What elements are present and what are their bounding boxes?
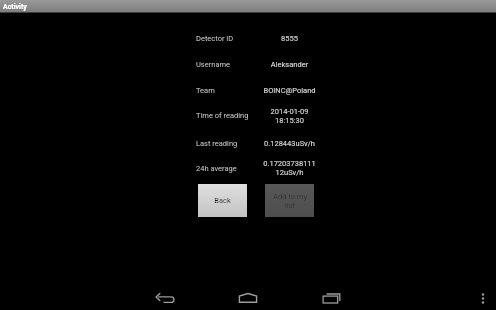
staticText: Username	[196, 60, 231, 69]
button[interactable]: Back	[152, 289, 176, 305]
button[interactable]: More options	[474, 289, 492, 309]
staticText: 0.128443uSv/h	[257, 139, 322, 148]
staticText: Back	[214, 196, 231, 205]
staticText: 8555	[257, 34, 322, 43]
staticText: Activity	[3, 3, 27, 11]
staticText: Time of reading	[196, 111, 249, 120]
staticText: Last reading	[196, 139, 238, 148]
button[interactable]: Home	[236, 289, 260, 305]
staticText: Team	[196, 86, 215, 95]
staticText: BOINC@Poland	[257, 86, 322, 95]
staticText: Aleksander	[257, 60, 322, 69]
staticText: 0.17203738111 12uSv/h	[257, 159, 322, 177]
button[interactable]: Back	[198, 184, 247, 217]
staticText: 2014-01-09 18:15:30	[257, 107, 322, 125]
staticText: Detector ID	[196, 34, 234, 43]
staticText: Add to my list	[273, 192, 307, 210]
button[interactable]: Recent apps	[320, 289, 344, 305]
staticText: 24h average	[196, 164, 237, 173]
button[interactable]: Add to my list	[265, 184, 314, 217]
